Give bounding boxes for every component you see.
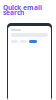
staticText: search (3, 8, 24, 17)
staticText: Quick email (3, 3, 42, 12)
